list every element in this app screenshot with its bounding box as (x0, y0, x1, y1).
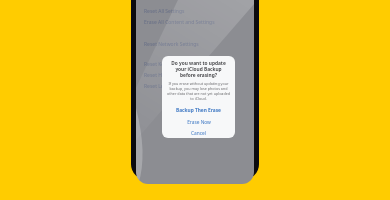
button[interactable]: Reset Network Settings (136, 39, 254, 50)
staticText: Reset All Settings (144, 8, 185, 15)
staticText: Reset Keyboard Dictionary (144, 61, 206, 68)
staticText: Erase Now (187, 119, 211, 126)
button[interactable]: Backup Then Erase (162, 104, 235, 116)
button[interactable]: Reset Keyboard Dictionary (136, 59, 254, 70)
button[interactable]: Reset Home Screen Layout (136, 70, 254, 81)
button[interactable]: Erase All Content and Settings (136, 17, 254, 28)
staticText: Do you want to update your iCloud Backup… (167, 60, 230, 78)
button[interactable]: Erase Now (162, 116, 235, 128)
staticText: Reset Location & Privacy (144, 83, 202, 90)
button[interactable]: Cancel (162, 128, 235, 138)
staticText: Erase All Content and Settings (144, 19, 215, 26)
button[interactable]: Reset All Settings (136, 6, 254, 17)
staticText: Backup Then Erase (176, 107, 221, 114)
staticText: If you erase without updating your backu… (166, 81, 231, 101)
staticText: Reset Home Screen Layout (144, 72, 207, 79)
staticText: Reset Network Settings (144, 41, 199, 48)
staticText: Cancel (191, 130, 206, 137)
button[interactable]: Reset Location & Privacy (136, 81, 254, 92)
